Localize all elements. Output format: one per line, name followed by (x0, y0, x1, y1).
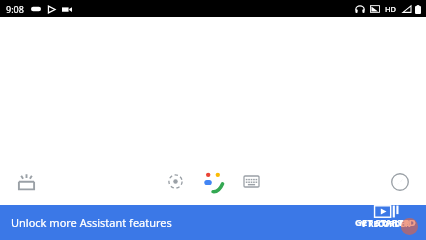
button[interactable]: Explore (384, 166, 416, 198)
staticText: HD (385, 4, 397, 14)
staticText: V RECORDER (361, 218, 411, 229)
button[interactable]: Google Assistant (157, 164, 269, 198)
button[interactable]: Unlock more Assistant features (0, 205, 426, 240)
button[interactable]: Snapshot (10, 166, 42, 198)
staticText: GET STARTED (355, 216, 416, 229)
staticText: Unlock more Assistant features (11, 215, 172, 230)
staticText: 9:08 (6, 3, 24, 15)
button[interactable]: GET STARTED (353, 214, 418, 231)
